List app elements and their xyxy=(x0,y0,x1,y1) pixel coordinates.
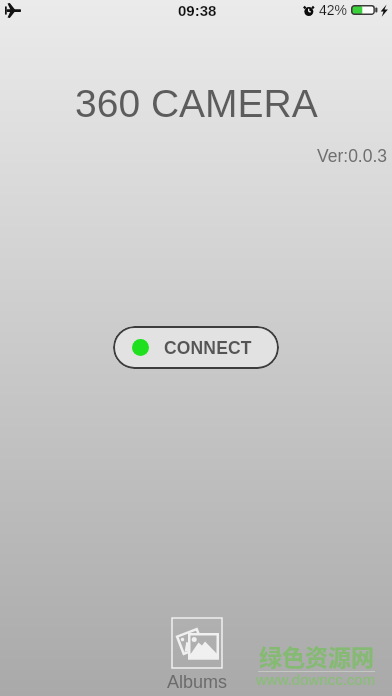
staticText: www.downcc.com xyxy=(256,671,376,688)
staticText: Albums xyxy=(167,672,228,692)
other: Albums xyxy=(172,618,222,668)
staticText: 360 CAMERA xyxy=(75,82,318,126)
staticText: CONNECT xyxy=(164,338,252,358)
staticText: 绿色资源网 xyxy=(259,639,374,672)
button[interactable]: CONNECT xyxy=(113,326,279,369)
staticText: 42% xyxy=(319,2,348,18)
staticText: Ver:0.0.3 xyxy=(317,146,388,166)
staticText: 09:38 xyxy=(178,2,217,19)
button[interactable]: Albums xyxy=(159,618,235,692)
